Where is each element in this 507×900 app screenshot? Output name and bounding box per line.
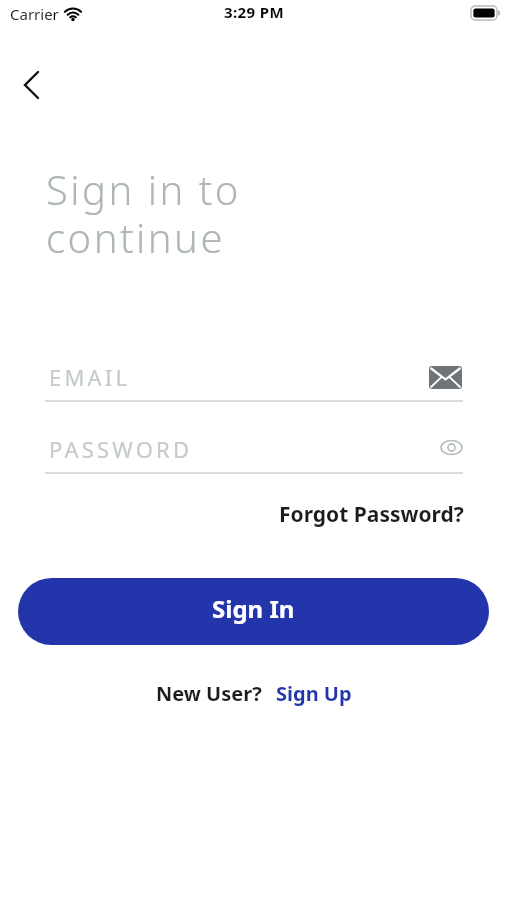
staticText: Sign in to continue — [46, 162, 241, 264]
staticText: Carrier — [10, 4, 59, 24]
staticText: New User? — [156, 680, 262, 707]
staticText: 3:29 PM — [224, 2, 285, 22]
staticText: PASSWORD — [49, 434, 193, 464]
staticText: Forgot Password? — [279, 500, 464, 529]
staticText: Sign Up — [276, 680, 352, 707]
button[interactable]: Sign In — [18, 578, 489, 645]
button[interactable] — [9, 63, 53, 107]
button[interactable]: Sign Up — [276, 680, 352, 707]
button[interactable]: Forgot Password? — [275, 500, 470, 534]
button[interactable]: PASSWORD — [45, 430, 463, 474]
staticText: EMAIL — [49, 362, 131, 392]
staticText: Sign In — [212, 592, 295, 625]
button[interactable]: EMAIL — [45, 358, 463, 402]
